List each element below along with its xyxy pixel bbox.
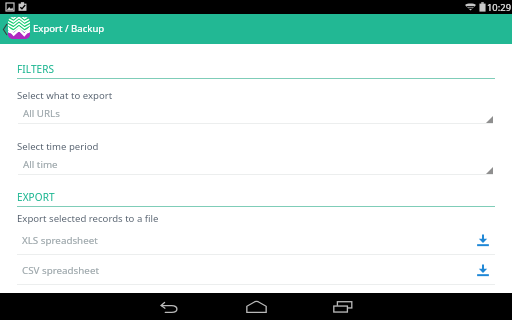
staticText: EXPORT	[17, 190, 55, 204]
button[interactable]	[0, 224, 512, 254]
staticText: CSV spreadsheet	[22, 264, 99, 277]
button[interactable]: Back	[147, 293, 191, 320]
button[interactable]: Home	[234, 293, 278, 320]
button[interactable]	[0, 255, 512, 284]
staticText: All time	[23, 158, 58, 171]
button[interactable]: All time	[18, 154, 493, 175]
staticText: XLS spreadsheet	[22, 234, 98, 247]
button[interactable]: All URLs	[18, 103, 493, 124]
button[interactable]: Back	[0, 14, 9, 44]
button[interactable]: Download CSV spreadsheet	[471, 258, 495, 282]
staticText: 10:29	[487, 1, 512, 14]
staticText: Select time period	[17, 140, 99, 153]
button[interactable]: Download XLS spreadsheet	[471, 228, 495, 252]
staticText: Select what to export	[17, 89, 113, 102]
staticText: Export selected records to a file	[17, 212, 159, 225]
staticText: Export / Backup	[33, 22, 105, 35]
staticText: All URLs	[23, 107, 60, 120]
staticText: FILTERS	[17, 62, 55, 76]
button[interactable]: Recents	[321, 293, 365, 320]
